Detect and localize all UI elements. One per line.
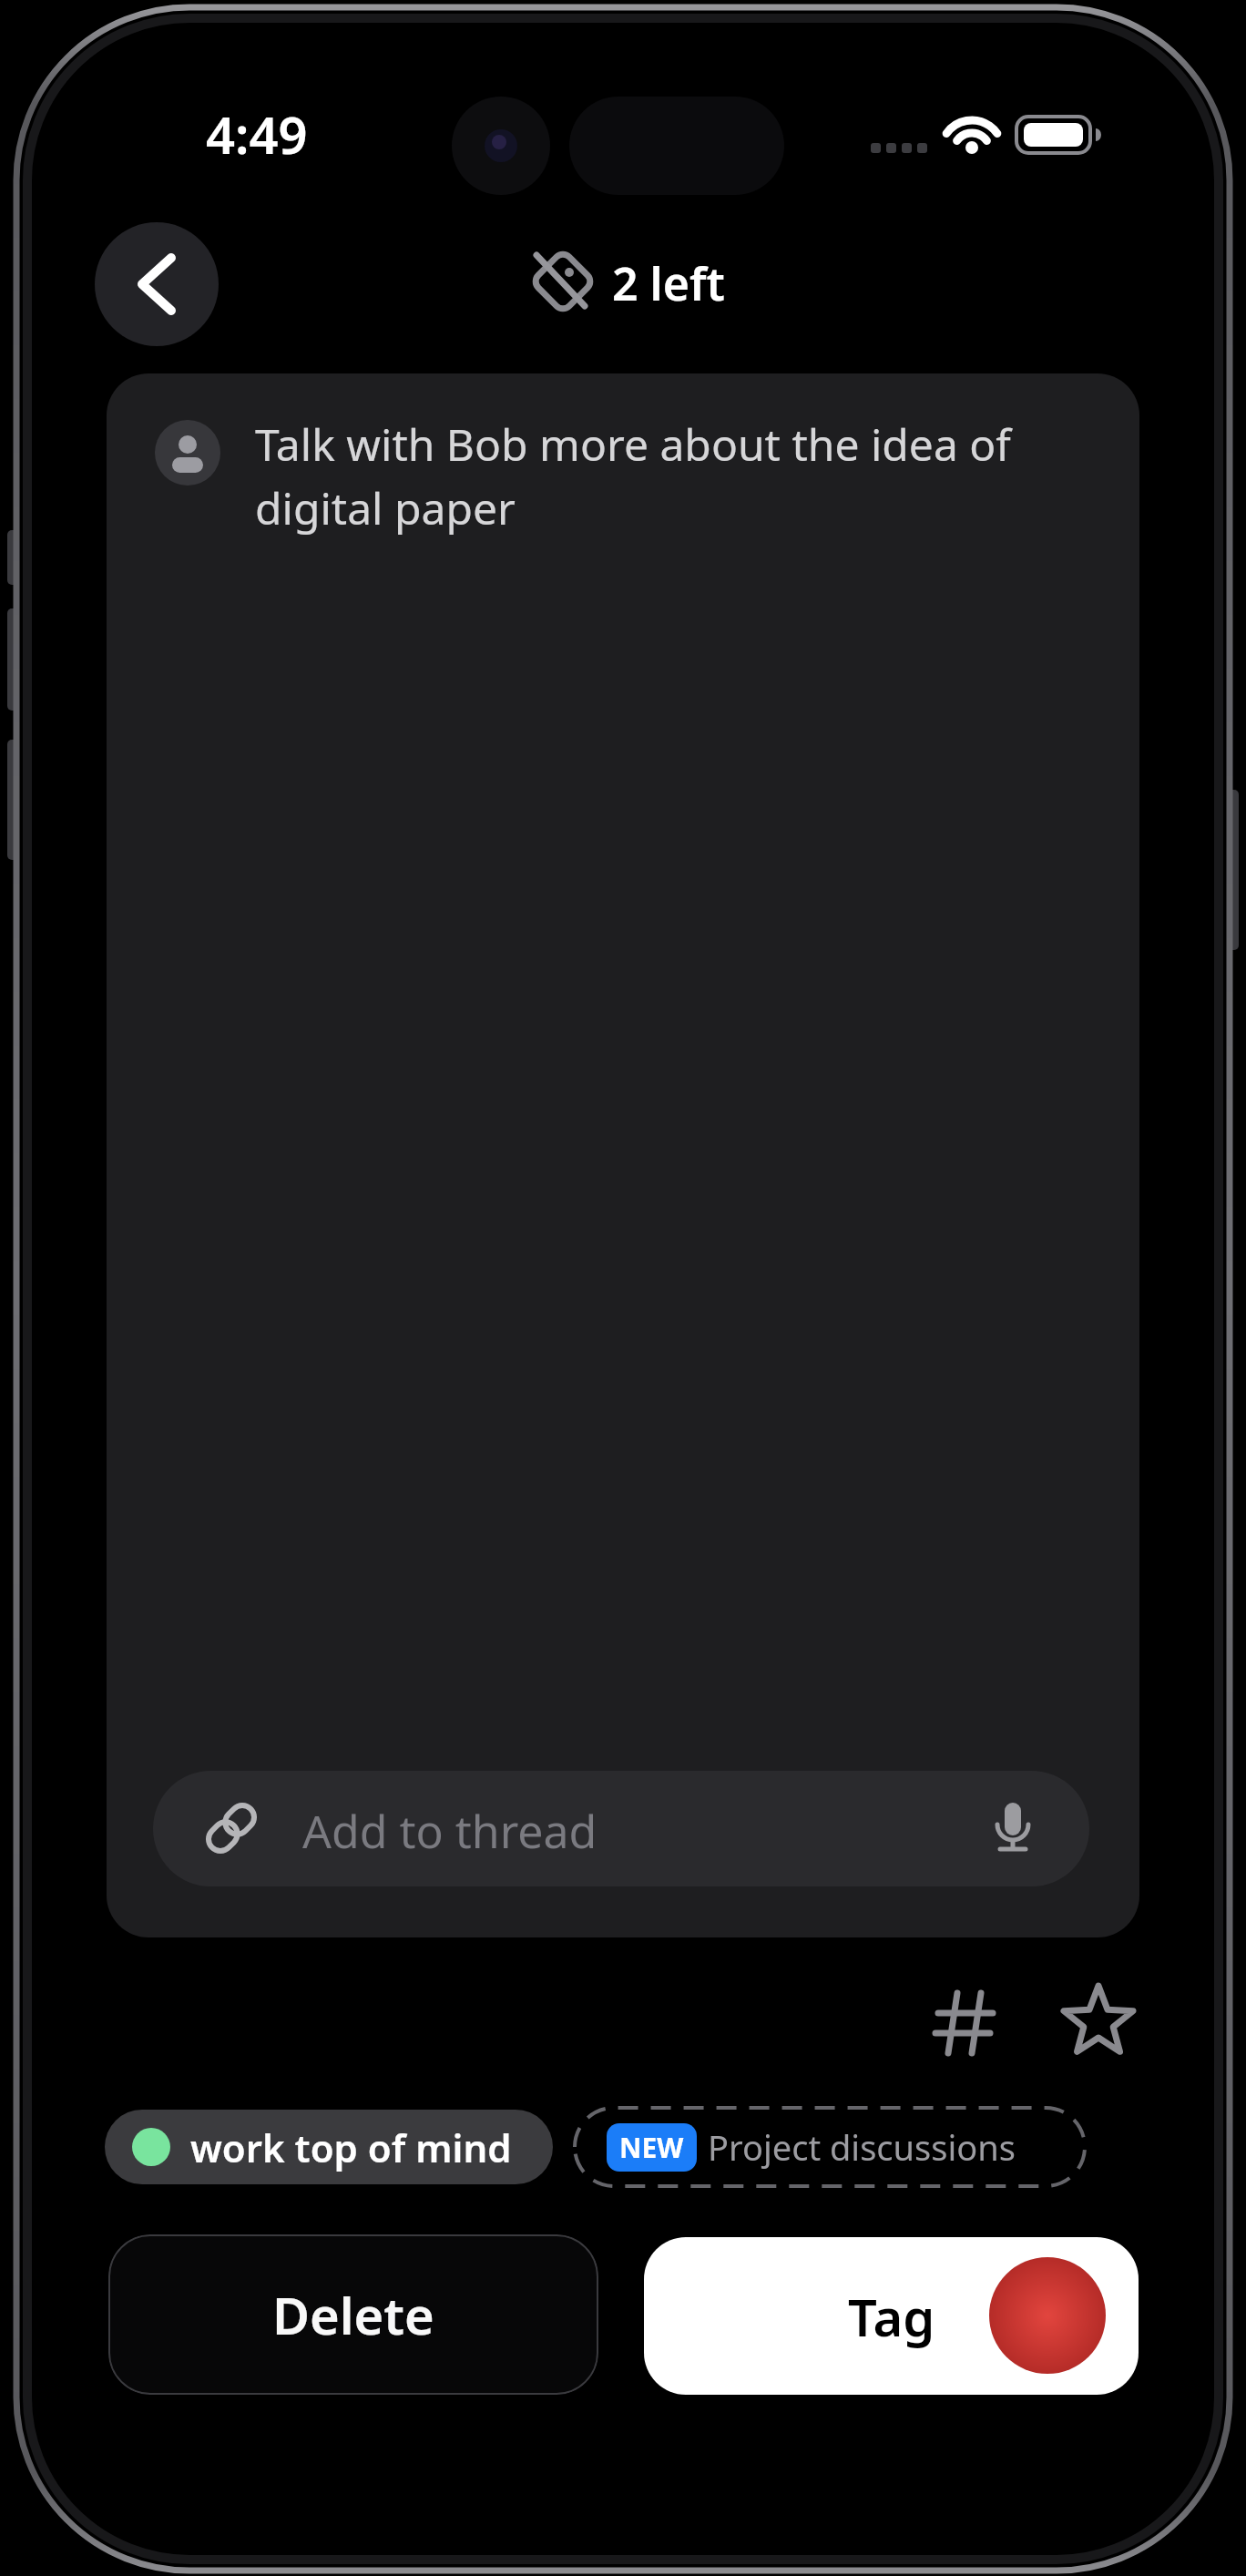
staticText: 2 left (612, 252, 725, 314)
button[interactable]: 2 left (526, 250, 725, 316)
button[interactable] (1057, 1978, 1140, 2062)
staticText: 4:49 (206, 99, 308, 169)
staticText: work top of mind (190, 2121, 512, 2173)
staticText: Tag (848, 2282, 935, 2351)
staticText: NEW (619, 2129, 684, 2166)
button[interactable]: work top of mind (105, 2110, 553, 2184)
staticText: Add to thread (302, 1800, 597, 1862)
staticText: Project discussions (708, 2123, 1016, 2171)
button[interactable]: Add to thread (153, 1771, 1089, 1886)
staticText: Talk with Bob more about the idea of dig… (255, 414, 1011, 537)
button[interactable] (95, 222, 219, 346)
button[interactable] (924, 1978, 1006, 2060)
staticText: Delete (272, 2280, 434, 2349)
button[interactable]: Tag (644, 2237, 1139, 2395)
button[interactable]: NEW (573, 2106, 1087, 2188)
button[interactable]: Delete (108, 2234, 598, 2395)
